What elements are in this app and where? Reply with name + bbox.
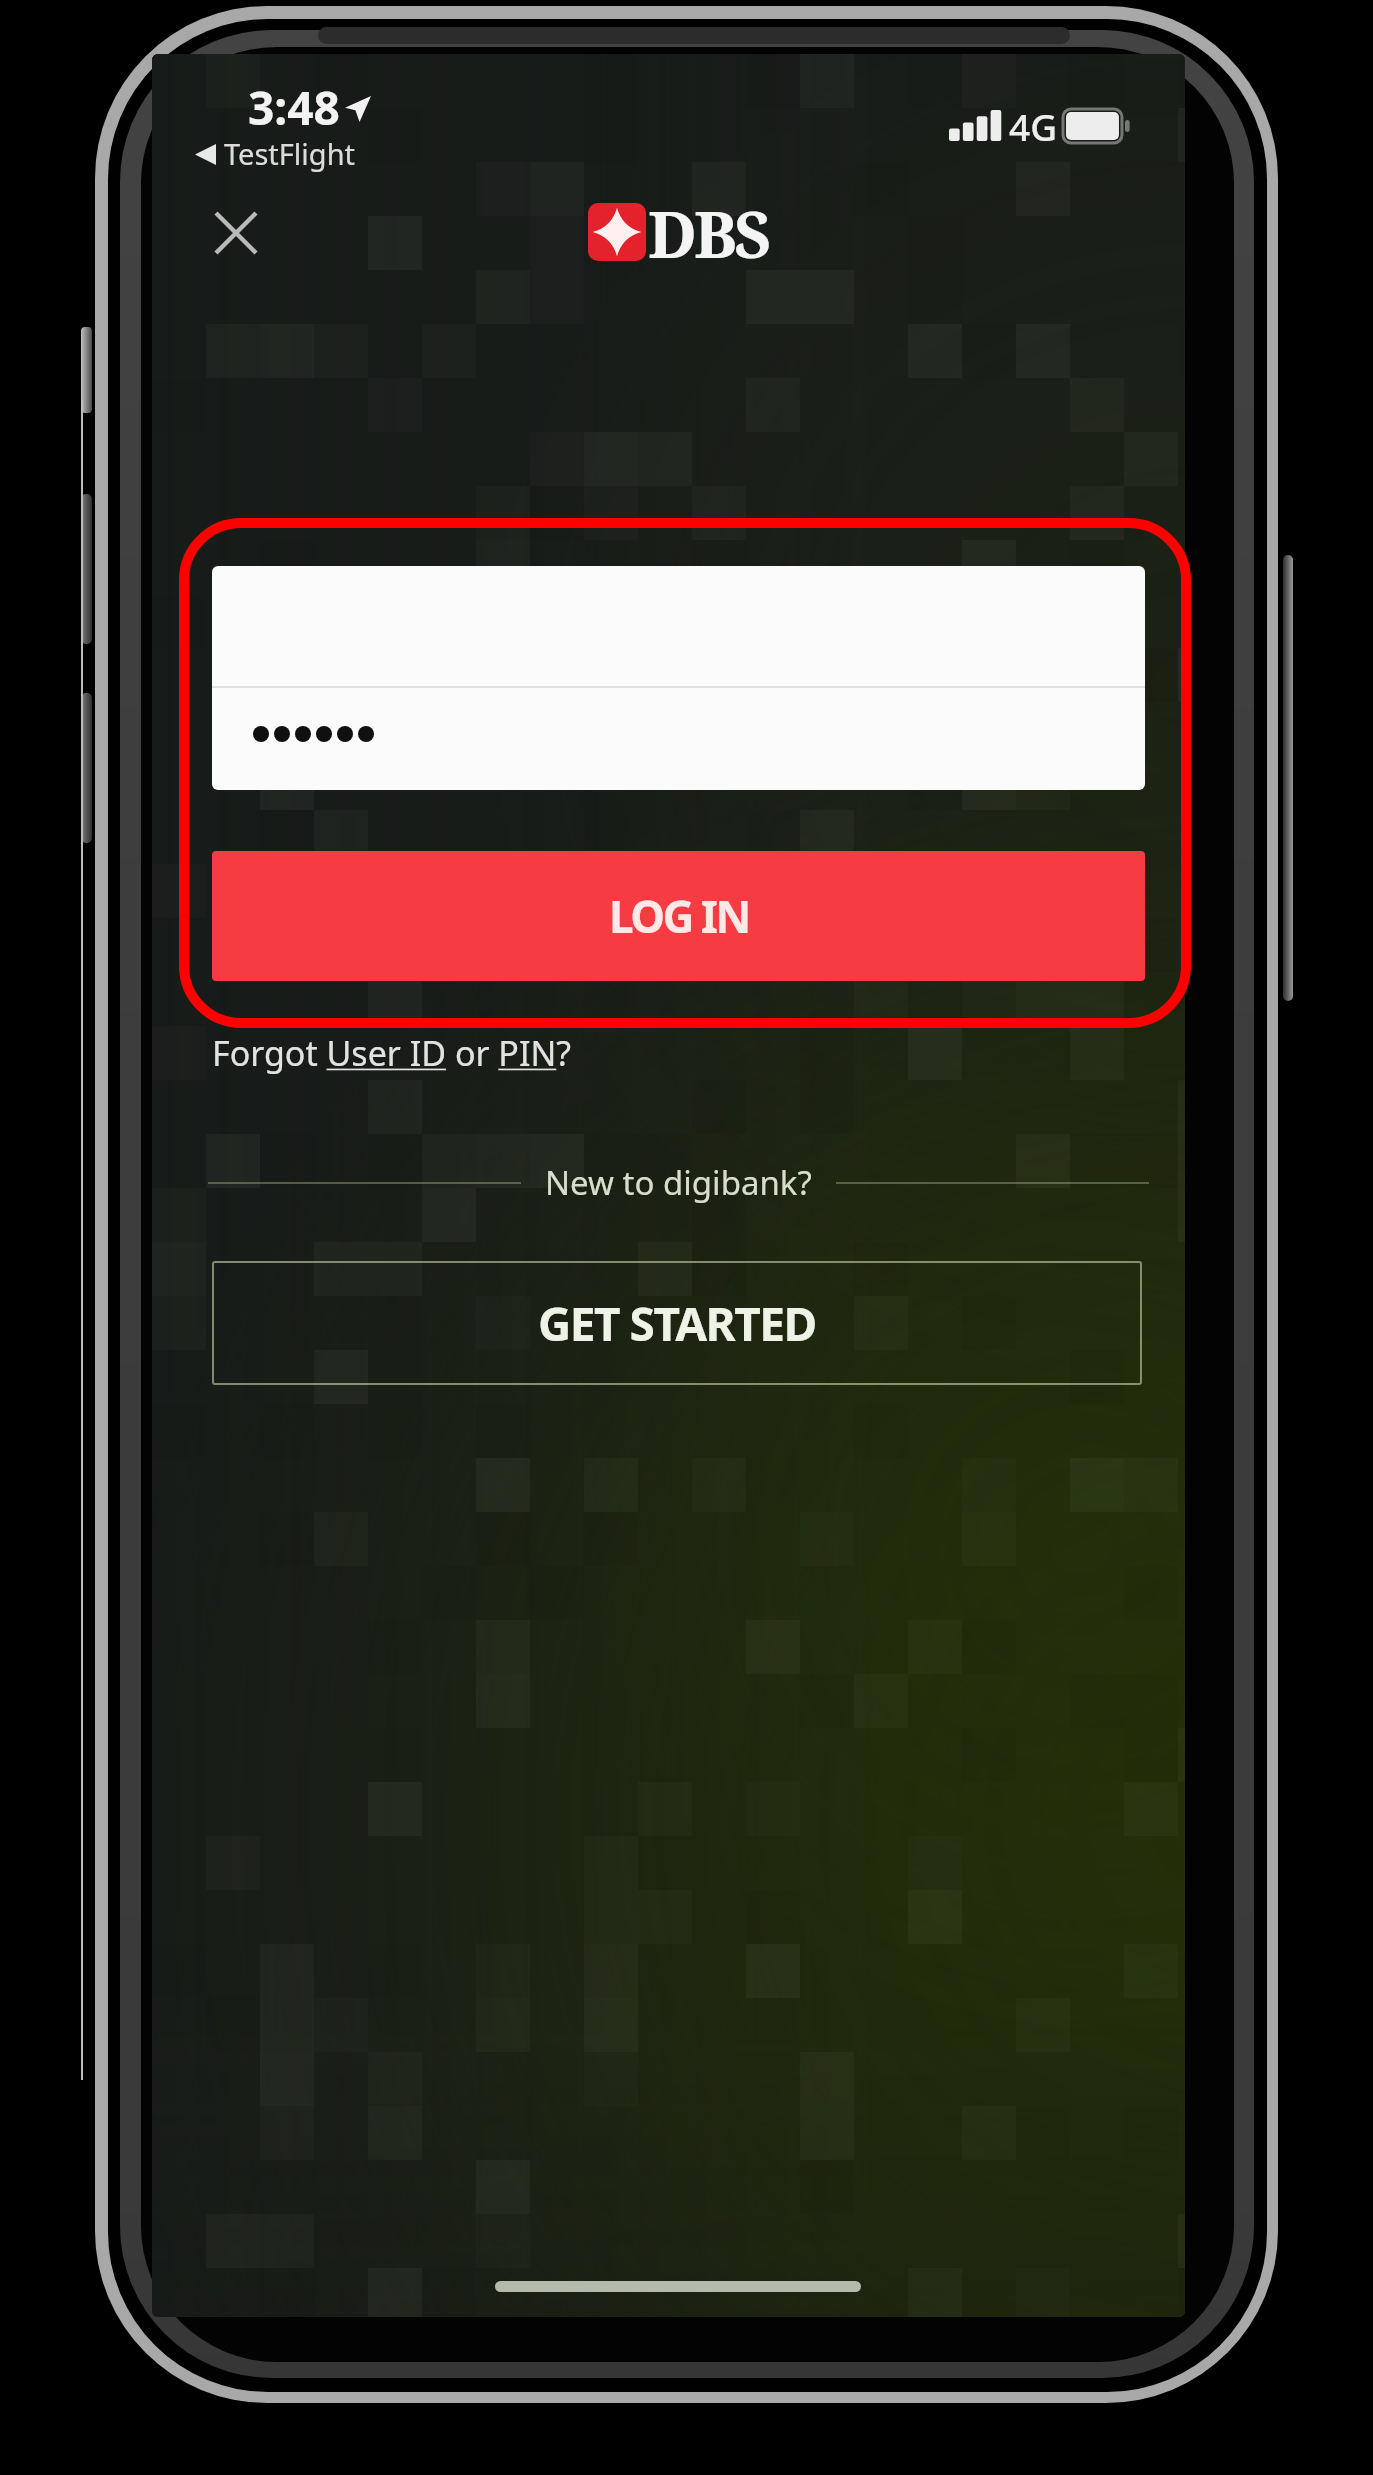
button[interactable]: GET STARTED [212,1261,1142,1385]
staticText: 3:48 [248,76,340,139]
button[interactable]: LOG IN [212,851,1145,981]
staticText: DBS [648,190,769,277]
staticText: 4G [1009,101,1058,151]
staticText: New to digibank? [545,1160,812,1205]
staticText: LOG IN [609,886,749,946]
button[interactable]: Forgot User ID or PIN? [212,1030,572,1076]
button[interactable] [212,688,1145,790]
staticText: GET STARTED [538,1292,816,1355]
staticText: Forgot User ID or PIN? [212,1030,572,1076]
button[interactable]: Close [192,189,280,277]
staticText: TestFlight [224,134,356,173]
